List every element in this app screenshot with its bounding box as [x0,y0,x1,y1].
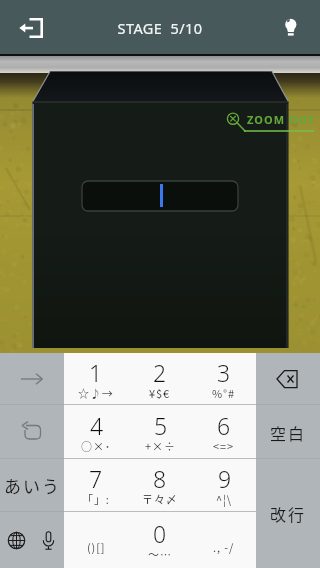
button[interactable]: 0 [128,512,192,568]
button[interactable]: Undo [0,405,64,459]
staticText: ()[] [87,539,106,555]
staticText: 5 [154,410,168,441]
button[interactable]: 5 [128,405,192,459]
staticText: 7 [89,463,103,494]
staticText: <=> [213,438,235,454]
button[interactable]: 空白 [256,405,320,459]
button[interactable]: Hint [259,0,320,55]
button[interactable]: 2 [128,353,192,405]
staticText: ^¦\ [216,491,233,507]
button[interactable]: 6 [192,405,256,459]
staticText: 空白 [270,421,307,444]
staticText: 〜… [148,546,172,562]
staticText: 2 [153,357,167,388]
staticText: ., -/ [213,539,235,555]
button[interactable]: 7 [64,459,128,512]
button[interactable]: あいう [0,459,64,512]
staticText: あいう [4,473,61,498]
button[interactable]: 8 [128,459,192,512]
button[interactable]: Switch keyboard [0,512,32,568]
staticText: 「」: [82,491,110,507]
button[interactable]: Voice input [32,512,64,568]
button[interactable]: ()[] [64,512,128,568]
staticText: STAGE 5/10 [61,18,259,38]
button[interactable]: Exit stage [0,0,61,55]
button[interactable]: 1 [64,353,128,405]
staticText: 6 [217,410,231,441]
button[interactable]: Next candidate [0,353,64,405]
staticText: 1 [89,357,103,388]
staticText: 9 [218,463,232,494]
button[interactable]: ., -/ [192,512,256,568]
staticText: ZOOM OUT [247,112,320,127]
staticText: 3 [217,357,231,388]
button[interactable]: 9 [192,459,256,512]
staticText: +×÷ [145,438,176,454]
button[interactable]: 3 [192,353,256,405]
staticText: 8 [153,463,167,494]
staticText: %°# [212,385,236,401]
button[interactable]: Backspace [256,353,320,405]
button[interactable]: Zoom out [224,106,320,136]
staticText: 0 [153,518,167,549]
staticText: 4 [90,410,104,441]
staticText: ○×･ [81,438,112,454]
staticText: ☆♪→ [78,385,114,401]
button[interactable]: 改行 [256,459,320,568]
staticText: 改行 [270,502,307,525]
button[interactable]: 4 [64,405,128,459]
staticText: ¥$€ [149,385,171,401]
staticText: 〒々〆 [142,491,178,507]
